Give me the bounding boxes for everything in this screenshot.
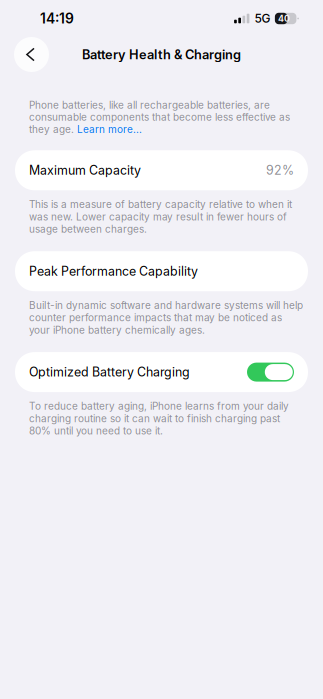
staticText: To reduce battery aging, iPhone learns f… <box>29 400 289 437</box>
staticText: 14:19 <box>40 10 74 27</box>
staticText: 92% <box>266 163 294 178</box>
staticText: Maximum Capacity <box>29 163 141 178</box>
staticText: 40 <box>278 13 290 24</box>
staticText: Built-in dynamic software and hardware s… <box>29 299 303 336</box>
button[interactable]: Optimized Battery Charging <box>247 363 294 382</box>
staticText: consumable components that become less e… <box>29 111 290 123</box>
staticText: 5G <box>254 11 270 26</box>
staticText: This is a measure of battery capacity re… <box>29 198 292 235</box>
staticText: Optimized Battery Charging <box>29 365 190 380</box>
button[interactable]: Peak Performance Capability <box>0 251 323 291</box>
staticText: Learn more... <box>77 123 142 135</box>
staticText: Peak Performance Capability <box>29 264 198 279</box>
staticText: Phone batteries, like all rechargeable b… <box>29 99 270 111</box>
button[interactable]: Back <box>14 37 49 72</box>
button[interactable]: Learn more... <box>77 123 142 135</box>
staticText: Battery Health & Charging <box>82 47 241 62</box>
staticText: they age. <box>29 123 77 135</box>
